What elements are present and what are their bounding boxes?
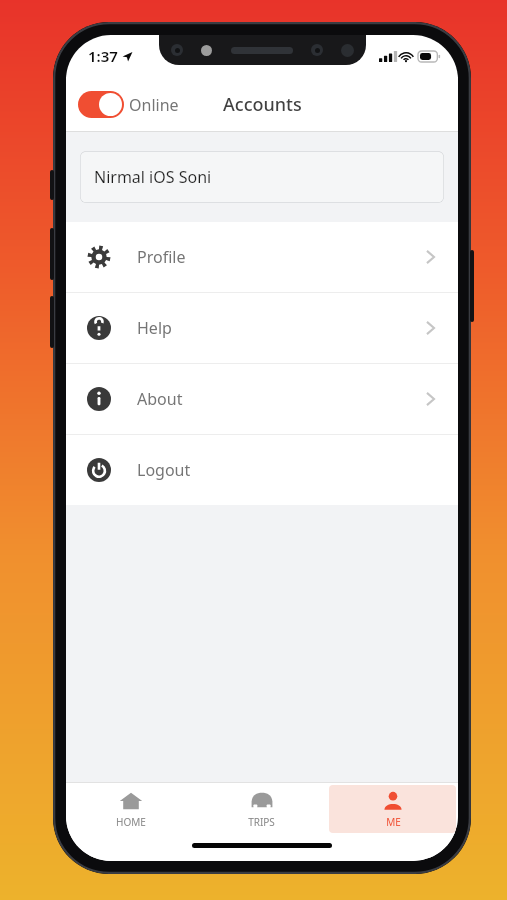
button[interactable]: About [66,364,458,434]
staticText: Online [129,94,179,116]
button[interactable]: Help [66,293,458,363]
staticText: ME [386,815,401,829]
staticText: 1:37 [88,46,118,66]
button[interactable]: Online [78,91,179,118]
staticText: Help [137,317,172,339]
staticText: Profile [137,246,186,268]
staticText: Accounts [223,92,302,117]
button[interactable]: Nirmal iOS Soni [80,151,444,203]
staticText: Nirmal iOS Soni [94,166,212,188]
button[interactable]: HOME [68,785,194,833]
button[interactable]: Profile [66,222,458,292]
staticText: TRIPS [248,815,275,829]
button[interactable]: Logout [66,435,458,505]
staticText: Logout [137,459,191,481]
staticText: HOME [116,815,146,829]
button[interactable]: TRIPS [198,785,325,833]
button[interactable]: ME [329,785,456,833]
staticText: About [137,388,183,410]
